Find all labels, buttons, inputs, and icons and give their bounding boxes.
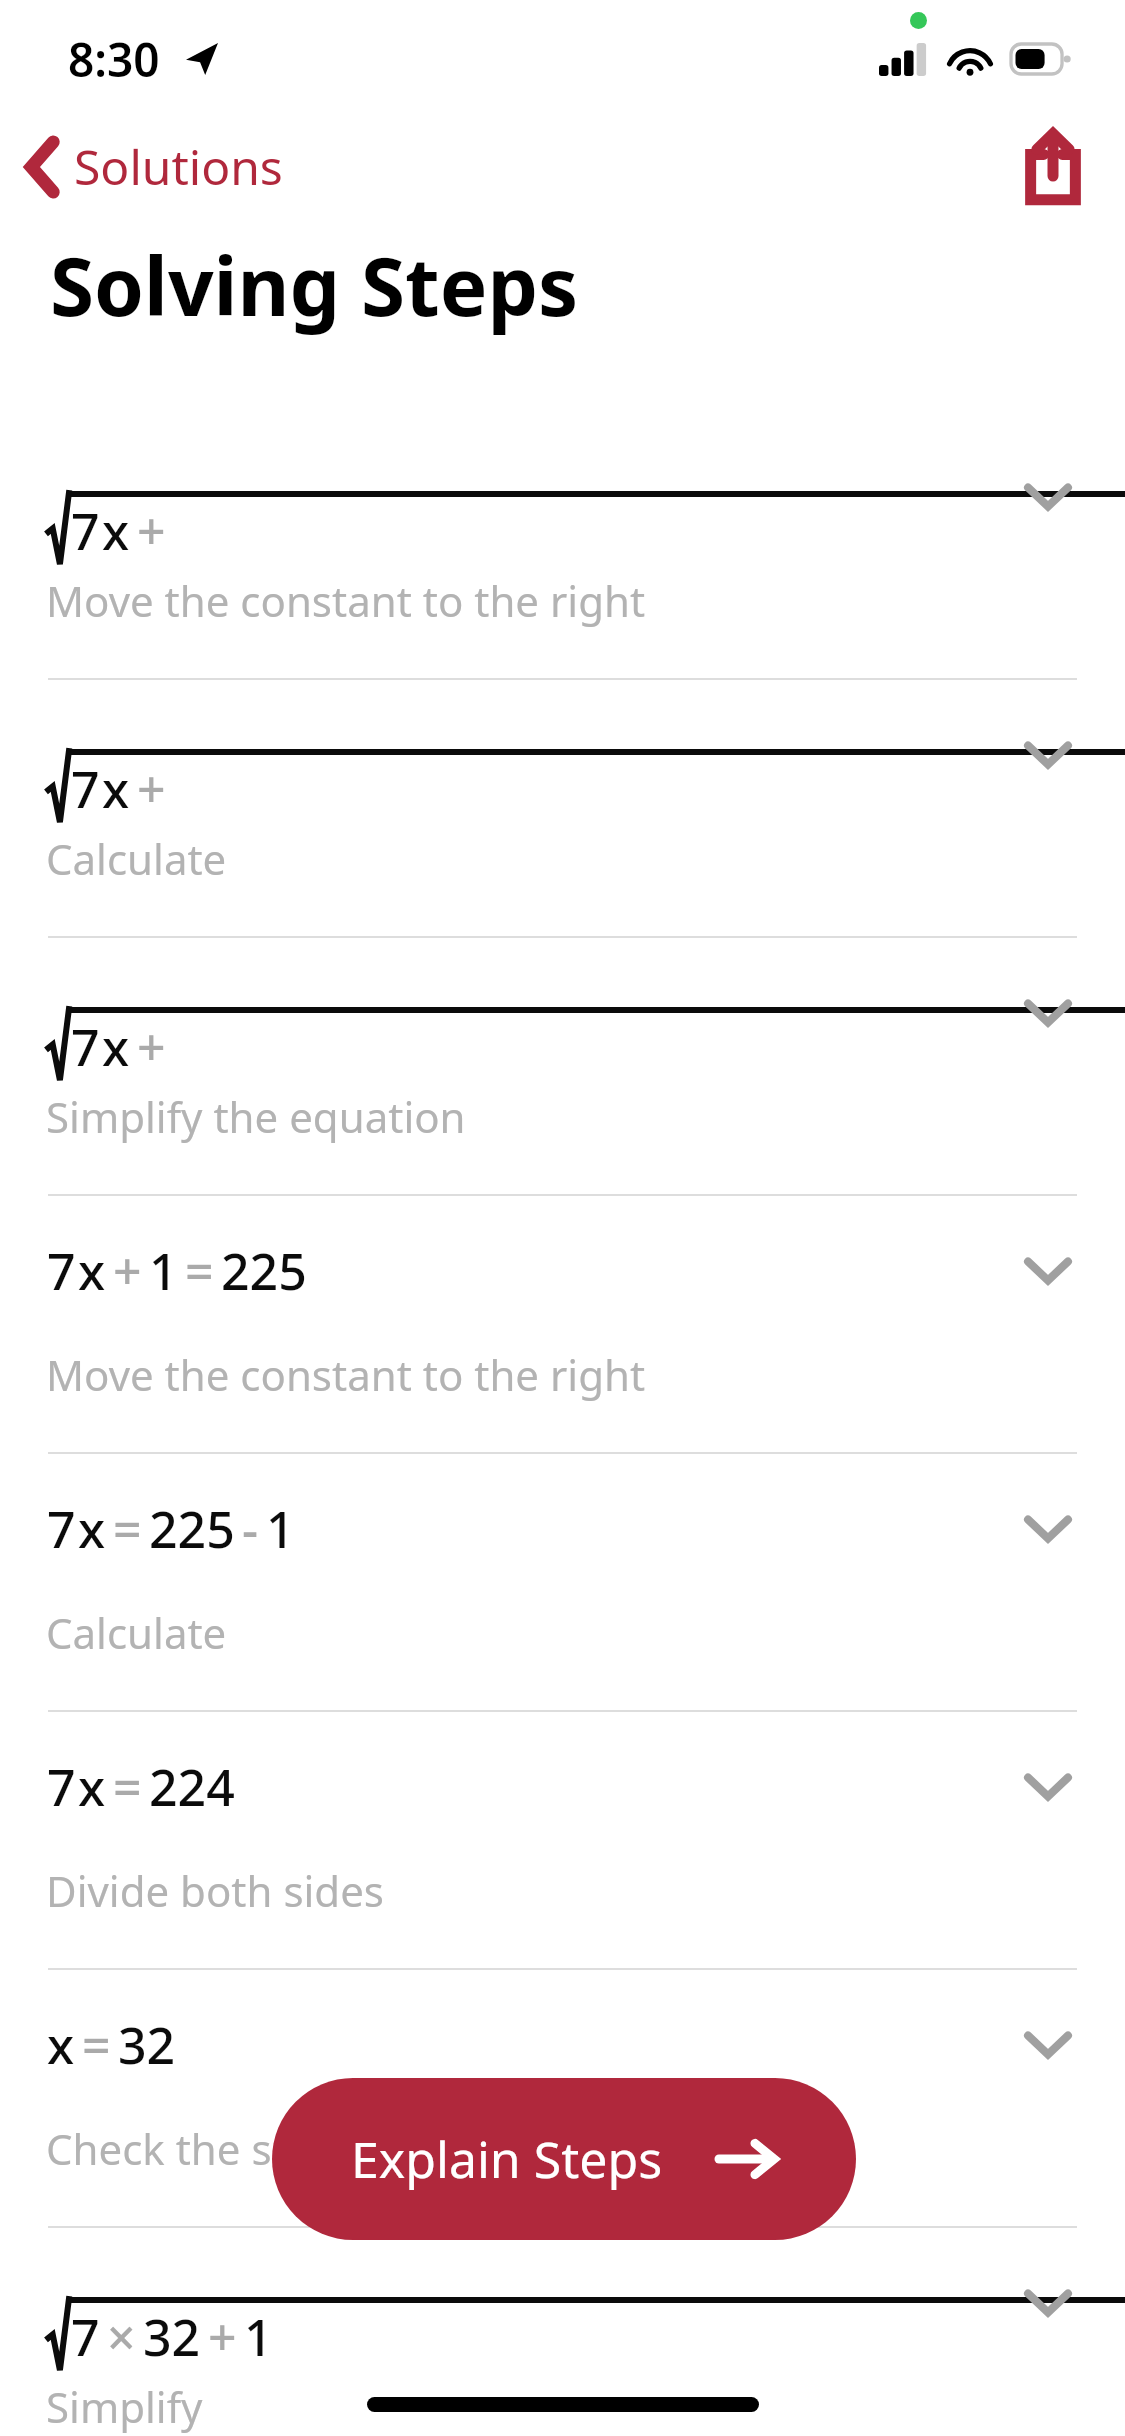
staticText: x [78, 1753, 106, 1821]
staticText: Check the solution [46, 2120, 412, 2177]
staticText: Explain Steps [351, 2125, 663, 2193]
staticText: = [113, 1753, 142, 1821]
staticText: Move the constant to the right [46, 572, 646, 629]
staticText: 1 [244, 2303, 273, 2371]
staticText: x [78, 1495, 106, 1563]
staticText: Calculate [46, 830, 227, 887]
staticText: 7 [47, 1495, 76, 1563]
button[interactable]: x [0, 1970, 1125, 2228]
other: Expand step [1023, 2278, 1073, 2328]
staticText: - [242, 1495, 259, 1563]
staticText: + [113, 1237, 142, 1305]
staticText: 7 [71, 2303, 100, 2371]
staticText: x [78, 1237, 106, 1305]
button[interactable]: 7 [0, 938, 1125, 1196]
staticText: x [102, 755, 130, 823]
staticText: Divide both sides [46, 1862, 384, 1919]
other: Expand step [1023, 730, 1073, 780]
staticText: Simplify the equation [46, 1088, 466, 1145]
other: Expand step [1023, 1504, 1073, 1554]
staticText: 7 [71, 497, 100, 565]
button[interactable]: Share [1027, 130, 1079, 202]
staticText: = [113, 1495, 142, 1563]
button[interactable]: 7 [0, 1712, 1125, 1970]
button[interactable]: 7 [0, 422, 1125, 680]
button[interactable]: 7 [0, 2228, 1125, 2436]
staticText: 7 [47, 1237, 76, 1305]
other: Expand step [1023, 2020, 1073, 2070]
staticText: 224 [149, 1753, 235, 1821]
staticText: + [208, 2303, 237, 2371]
staticText: 1 [266, 1495, 295, 1563]
button[interactable]: 7 [0, 680, 1125, 938]
button[interactable]: 7 [0, 1196, 1125, 1454]
staticText: Calculate [46, 1604, 227, 1661]
staticText: 7 [71, 1013, 100, 1081]
staticText: + [137, 497, 166, 565]
other: Expand step [1023, 1246, 1073, 1296]
button[interactable]: Solutions [18, 126, 293, 207]
staticText: x [102, 1013, 130, 1081]
staticText: + [137, 755, 166, 823]
staticText: 225 [221, 1237, 307, 1305]
staticText: 7 [47, 1753, 76, 1821]
staticText: = [82, 2011, 111, 2079]
staticText: × [107, 2303, 136, 2371]
button[interactable]: 7 [0, 1454, 1125, 1712]
staticText: + [137, 1013, 166, 1081]
other: Expand step [1023, 472, 1073, 522]
staticText: x [102, 497, 130, 565]
staticText: = [185, 1237, 214, 1305]
staticText: x [47, 2011, 75, 2079]
button[interactable]: Explain Steps [272, 2078, 856, 2240]
staticText: 8:30 [68, 28, 160, 91]
staticText: 32 [118, 2011, 176, 2079]
staticText: 225 [149, 1495, 235, 1563]
staticText: Solutions [74, 134, 283, 199]
staticText: 1 [149, 1237, 178, 1305]
staticText: Simplify [46, 2378, 203, 2435]
staticText: 7 [71, 755, 100, 823]
staticText: Move the constant to the right [46, 1346, 646, 1403]
other: Expand step [1023, 988, 1073, 1038]
other: Expand step [1023, 1762, 1073, 1812]
staticText: 32 [143, 2303, 201, 2371]
staticText: Solving Steps [50, 230, 579, 339]
